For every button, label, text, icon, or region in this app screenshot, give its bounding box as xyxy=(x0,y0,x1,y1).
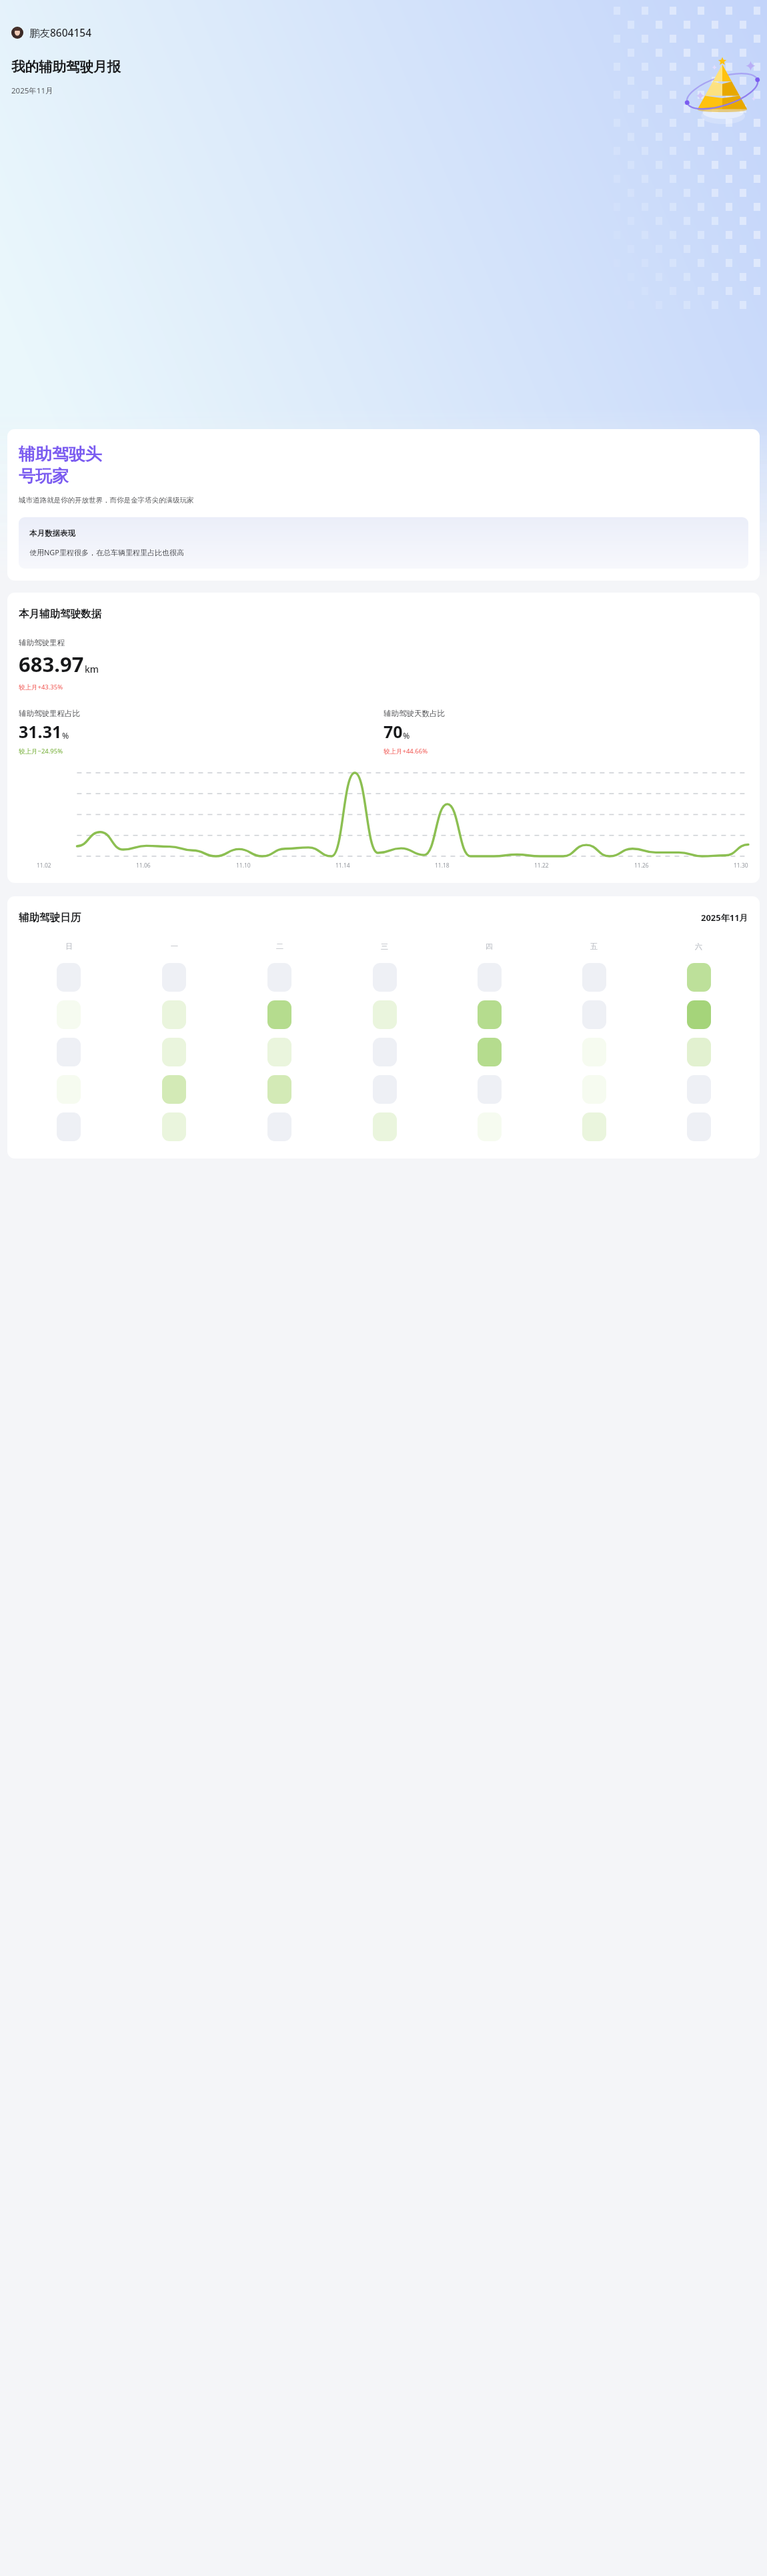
staticText: 辅助驾驶里程 xyxy=(19,638,65,647)
button[interactable] xyxy=(373,1038,397,1066)
button[interactable] xyxy=(267,1075,291,1104)
button[interactable] xyxy=(57,1112,81,1141)
staticText: 六 xyxy=(695,942,702,951)
staticText: 一 xyxy=(171,942,178,951)
staticText: 31.31 xyxy=(19,720,62,743)
button[interactable] xyxy=(687,1075,711,1104)
button[interactable] xyxy=(57,1075,81,1104)
button[interactable]: 本月数据表现 xyxy=(19,517,748,569)
staticText: 鹏友8604154 xyxy=(29,25,92,39)
button[interactable] xyxy=(373,1000,397,1029)
button[interactable] xyxy=(162,963,186,992)
button[interactable] xyxy=(162,1112,186,1141)
staticText: 11.10 xyxy=(236,862,251,870)
staticText: 日 xyxy=(65,942,73,951)
staticText: 11.18 xyxy=(435,862,450,870)
button[interactable] xyxy=(582,963,606,992)
staticText: 70 xyxy=(383,720,403,743)
button[interactable] xyxy=(687,1112,711,1141)
staticText: 我的辅助驾驶月报 xyxy=(11,58,121,75)
staticText: 三 xyxy=(381,942,388,951)
button[interactable] xyxy=(687,963,711,992)
staticText: % xyxy=(62,730,69,741)
button[interactable] xyxy=(478,963,502,992)
staticText: 11.22 xyxy=(534,862,549,870)
staticText: 11.30 xyxy=(734,862,748,870)
staticText: 城市道路就是你的开放世界，而你是金字塔尖的满级玩家 xyxy=(19,496,194,505)
button[interactable] xyxy=(478,1075,502,1104)
staticText: 2025年11月 xyxy=(701,912,748,924)
button[interactable] xyxy=(267,1112,291,1141)
button[interactable] xyxy=(57,1038,81,1066)
button[interactable] xyxy=(267,1000,291,1029)
staticText: 五 xyxy=(590,942,598,951)
button[interactable] xyxy=(373,963,397,992)
staticText: 较上月+44.66% xyxy=(383,747,428,755)
staticText: 四 xyxy=(486,942,493,951)
button[interactable] xyxy=(478,1038,502,1066)
staticText: 辅助驾驶里程占比 xyxy=(19,709,80,718)
staticText: 11.14 xyxy=(335,862,350,870)
staticText: 本月数据表现 xyxy=(29,529,75,538)
button[interactable] xyxy=(373,1112,397,1141)
staticText: % xyxy=(403,730,410,741)
button[interactable] xyxy=(162,1075,186,1104)
staticText: 本月辅助驾驶数据 xyxy=(19,607,101,621)
button[interactable] xyxy=(478,1000,502,1029)
staticText: 辅助驾驶日历 xyxy=(19,911,81,924)
button[interactable] xyxy=(582,1038,606,1066)
button[interactable] xyxy=(582,1112,606,1141)
other: Golden pyramid trophy xyxy=(683,49,762,124)
button[interactable]: 辅助驾驶里程占比 xyxy=(19,709,383,755)
staticText: 2025年11月 xyxy=(11,85,53,96)
button[interactable] xyxy=(478,1112,502,1141)
staticText: 辅助驾驶头 xyxy=(19,444,102,464)
staticText: 使用NGP里程很多，在总车辆里程里占比也很高 xyxy=(29,547,185,557)
button[interactable] xyxy=(373,1075,397,1104)
button[interactable] xyxy=(57,963,81,992)
button[interactable] xyxy=(57,1000,81,1029)
staticText: 号玩家 xyxy=(19,466,69,487)
staticText: 辅助驾驶天数占比 xyxy=(383,709,445,718)
button[interactable] xyxy=(687,1000,711,1029)
staticText: 11.06 xyxy=(136,862,151,870)
button[interactable] xyxy=(162,1000,186,1029)
staticText: 较上月+43.35% xyxy=(19,683,63,691)
button[interactable] xyxy=(687,1038,711,1066)
button[interactable] xyxy=(267,963,291,992)
staticText: 二 xyxy=(276,942,283,951)
button[interactable] xyxy=(582,1000,606,1029)
staticText: 11.02 xyxy=(37,862,51,870)
button[interactable] xyxy=(162,1038,186,1066)
button[interactable]: 辅助驾驶天数占比 xyxy=(383,709,748,755)
button[interactable] xyxy=(582,1075,606,1104)
button[interactable]: 鹏友8604154 xyxy=(11,25,92,39)
staticText: 683.97 xyxy=(19,650,84,678)
staticText: 11.26 xyxy=(634,862,649,870)
staticText: km xyxy=(85,663,99,675)
button[interactable] xyxy=(267,1038,291,1066)
staticText: 较上月−24.95% xyxy=(19,747,63,755)
